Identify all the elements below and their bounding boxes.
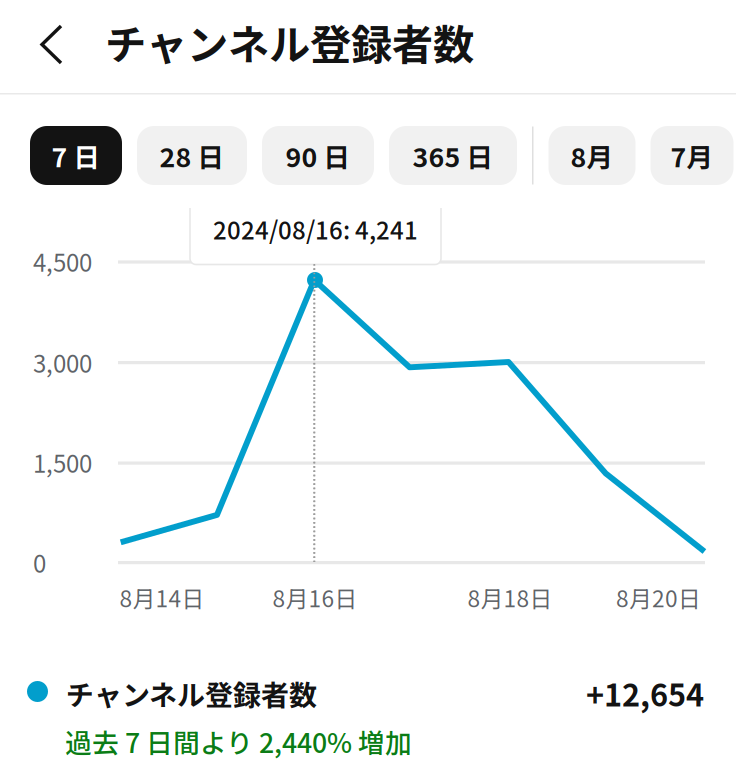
staticText: 8月16日 [272,581,357,614]
staticText: 0 [33,545,46,580]
staticText: チャンネル登録者数 [66,673,317,713]
staticText: 365 日 [412,136,493,175]
staticText: 7月 [670,136,713,175]
staticText: +12,654 [586,671,704,715]
staticText: 過去 7 日間より 2,440% 増加 [65,722,412,761]
button[interactable]: 365 日 [389,126,517,185]
button[interactable]: 8月 [548,126,635,185]
staticText: 3,000 [33,345,92,380]
staticText: 8月20日 [616,581,701,614]
staticText: 1,500 [33,445,92,480]
button[interactable]: 7 日 [30,126,122,185]
button[interactable]: 7月 [650,126,733,185]
staticText: 28 日 [159,136,224,175]
staticText: 8月14日 [119,581,204,614]
staticText: 90 日 [285,136,350,175]
staticText: 2024/08/16: 4,241 [213,212,418,246]
staticText: 7 日 [51,136,100,175]
button[interactable]: 28 日 [137,126,247,185]
button[interactable]: 戻る [16,0,88,92]
staticText: 8月18日 [467,581,552,614]
button[interactable]: 90 日 [262,126,374,185]
staticText: チャンネル登録者数 [105,12,474,72]
staticText: 8月 [570,136,613,175]
staticText: 4,500 [33,244,92,279]
